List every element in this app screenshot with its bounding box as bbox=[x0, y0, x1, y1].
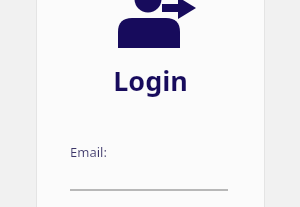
other: Login account icon bbox=[112, 0, 202, 50]
staticText: Email: bbox=[70, 143, 107, 161]
button[interactable] bbox=[70, 169, 228, 191]
staticText: Login bbox=[113, 62, 188, 99]
